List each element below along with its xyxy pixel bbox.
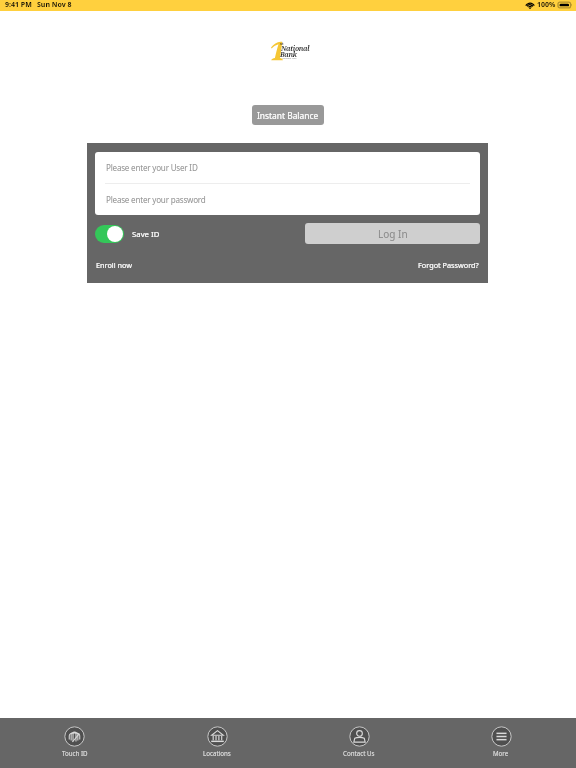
staticText: More <box>493 749 509 757</box>
staticText: Save ID <box>132 229 160 240</box>
staticText: Locations <box>203 749 231 757</box>
staticText: Log In <box>378 227 408 241</box>
staticText: Please enter your User ID <box>106 162 198 173</box>
other: Contact Us <box>349 726 370 747</box>
button[interactable]: Instant Balance <box>252 105 324 125</box>
button[interactable]: Locations <box>146 718 288 768</box>
button[interactable]: Please enter your User ID <box>95 152 480 183</box>
button[interactable]: Forgot Password? <box>418 260 479 270</box>
staticText: Sun Nov 8 <box>37 0 72 10</box>
button[interactable]: Save ID <box>95 225 160 243</box>
button[interactable]: Enroll now <box>96 260 133 270</box>
staticText: MEMBER FDIC <box>282 57 297 60</box>
staticText: Please enter your password <box>106 194 206 205</box>
staticText: Enroll now <box>96 260 133 270</box>
staticText: Instant Balance <box>257 110 319 121</box>
button[interactable]: Touch ID <box>3 718 146 768</box>
button[interactable]: Contact Us <box>288 718 430 768</box>
staticText: Bank <box>280 50 297 59</box>
staticText: Touch ID <box>62 749 88 757</box>
button[interactable]: More <box>430 718 572 768</box>
other: Locations <box>207 726 228 747</box>
other: More <box>491 726 512 747</box>
other: Touch ID <box>64 726 85 747</box>
staticText: st <box>280 41 284 47</box>
staticText: 100% <box>537 0 556 10</box>
staticText: Contact Us <box>343 749 375 757</box>
button[interactable]: Please enter your password <box>95 184 480 215</box>
staticText: 9:41 PM <box>5 0 32 10</box>
staticText: Forgot Password? <box>418 260 479 270</box>
button[interactable]: Log In <box>305 223 480 244</box>
staticText: National <box>281 44 310 53</box>
